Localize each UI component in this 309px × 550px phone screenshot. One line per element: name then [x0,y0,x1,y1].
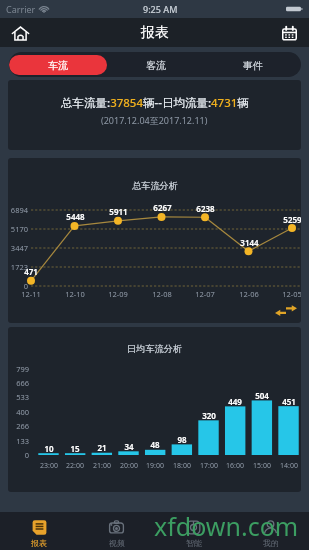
button[interactable]: Calendar [277,21,301,45]
staticText: 19:00 [146,461,164,471]
staticText: 12-08 [152,289,172,299]
staticText: xfdown.com [154,509,299,543]
staticText: 16:00 [226,461,244,471]
staticText: 6238 [196,203,215,214]
staticText: 5448 [66,211,85,222]
staticText: 9:25 AM [143,3,178,15]
button[interactable]: 我的 [232,512,309,550]
staticText: 48 [150,439,160,450]
staticText: 5259 [283,214,301,225]
staticText: 12-07 [195,289,215,299]
staticText: 449 [228,396,242,407]
button[interactable]: 智能 [155,512,232,550]
staticText: 22:00 [66,461,84,471]
staticText: 98 [177,434,187,445]
staticText: 34 [124,441,134,452]
staticText: 3447 [10,243,28,253]
button[interactable]: Swipe [275,305,297,316]
staticText: 799 [16,364,29,374]
button[interactable]: 视频 [78,512,155,550]
staticText: 日均车流分析 [127,343,183,355]
staticText: 504 [255,390,269,401]
staticText: 320 [202,410,216,421]
staticText: 3144 [240,237,259,248]
staticText: 12-06 [239,289,259,299]
staticText: 23:00 [40,461,58,471]
button[interactable]: 报表 [0,512,78,550]
staticText: 总车流分析 [132,180,178,192]
staticText: 总车流量:37854辆--日均流量:4731辆 [61,95,249,111]
staticText: Carrier [6,3,36,15]
staticText: 12-05 [282,289,301,299]
staticText: 21 [97,442,107,453]
staticText: 18:00 [173,461,191,471]
staticText: 12-10 [65,289,85,299]
staticText: 266 [16,421,29,431]
staticText: 事件 [243,59,263,72]
staticText: 471 [24,266,38,277]
staticText: (2017.12.04至2017.12.11) [101,114,208,126]
staticText: 14:00 [280,461,298,471]
button[interactable]: 客流 [107,55,204,75]
staticText: 451 [282,396,296,407]
staticText: 智能 [186,538,202,548]
button[interactable]: 事件 [204,55,301,75]
staticText: 666 [16,378,29,388]
staticText: 车流 [48,59,68,72]
staticText: 视频 [109,538,125,548]
staticText: 17:00 [200,461,218,471]
staticText: 400 [16,407,29,417]
staticText: 21:00 [93,461,111,471]
button[interactable]: Home [8,21,32,45]
staticText: 我的 [263,538,279,548]
staticText: 15:00 [253,461,271,471]
staticText: 6267 [153,202,172,213]
staticText: 5170 [10,224,28,234]
staticText: 报表 [141,24,169,42]
staticText: 15 [70,443,80,454]
staticText: 5911 [109,206,128,217]
staticText: 12-09 [108,289,128,299]
staticText: 1723 [10,262,28,272]
staticText: 0 [23,281,28,291]
staticText: 533 [16,392,29,402]
staticText: 12-11 [21,289,41,299]
staticText: 报表 [31,538,47,548]
staticText: 20:00 [120,461,138,471]
staticText: 0 [24,450,29,460]
staticText: 10 [44,443,54,454]
button[interactable]: 车流 [9,55,107,75]
staticText: 6894 [10,205,28,215]
staticText: 133 [16,436,29,446]
staticText: 客流 [146,59,166,72]
